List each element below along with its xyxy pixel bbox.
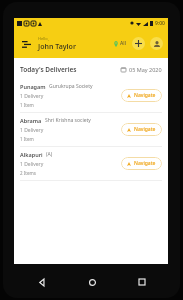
- button[interactable]: Navigate: [121, 157, 162, 170]
- button[interactable]: Home: [83, 273, 101, 291]
- staticText: Navigate: [134, 160, 156, 167]
- staticText: 1 Delivery: [20, 93, 44, 100]
- staticText: Hello,: [38, 36, 49, 41]
- staticText: All: [120, 40, 126, 47]
- button[interactable]: Profile: [150, 37, 163, 50]
- button[interactable]: Recent apps: [133, 273, 151, 291]
- button[interactable]: Navigate: [121, 123, 162, 136]
- staticText: John Taylor: [38, 42, 76, 52]
- staticText: Punagam: [20, 83, 46, 90]
- staticText: 1 Item: [20, 102, 34, 108]
- button[interactable]: Alkapuri: [14, 147, 168, 180]
- staticText: 05 May 2020: [129, 66, 162, 73]
- staticText: Shri Krishna society: [45, 117, 91, 124]
- staticText: 9:00: [155, 20, 165, 27]
- button[interactable]: Menu: [19, 37, 33, 51]
- staticText: 1 Item: [20, 136, 34, 142]
- button[interactable]: Abrama: [14, 113, 168, 146]
- staticText: Alkapuri: [20, 151, 43, 158]
- staticText: Navigate: [134, 92, 156, 99]
- button[interactable]: Punagam: [14, 79, 168, 112]
- staticText: 2 Items: [20, 170, 36, 176]
- button[interactable]: All: [114, 40, 126, 47]
- staticText: (A): [46, 151, 53, 158]
- staticText: Gurukrupa Society: [49, 83, 93, 90]
- staticText: 1 Delivery: [20, 161, 44, 168]
- staticText: Today's Deliveries: [20, 65, 77, 74]
- button[interactable]: Hello,: [38, 36, 76, 52]
- staticText: 1 Delivery: [20, 127, 44, 134]
- button[interactable]: Add: [132, 37, 145, 50]
- button[interactable]: Navigate: [121, 89, 162, 102]
- button[interactable]: Back: [32, 273, 50, 291]
- button[interactable]: 05 May 2020: [121, 66, 162, 73]
- staticText: Abrama: [20, 117, 42, 124]
- staticText: Navigate: [134, 126, 156, 133]
